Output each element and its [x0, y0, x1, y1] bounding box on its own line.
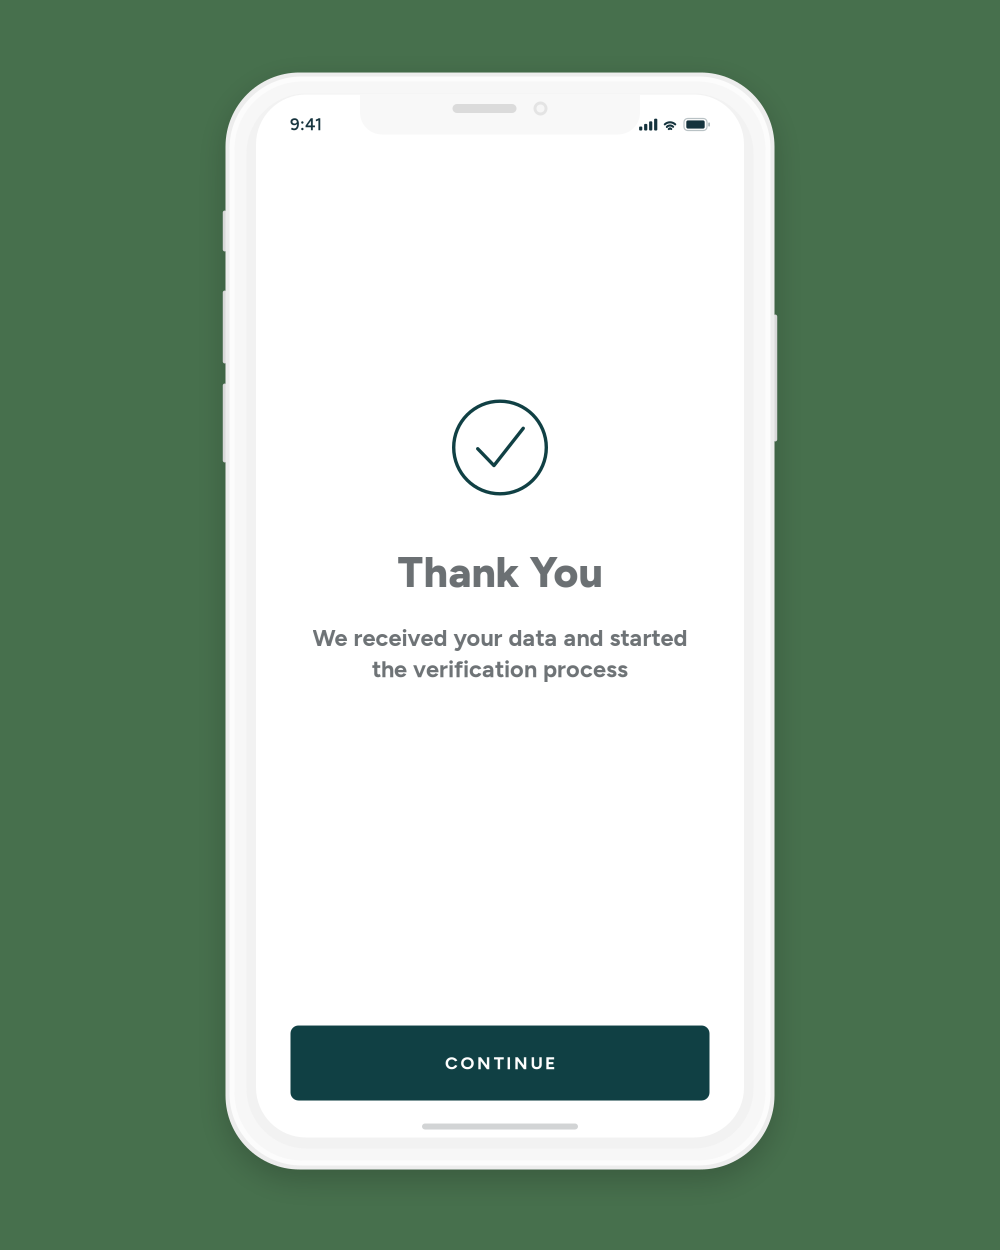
staticText: the verification process	[372, 655, 628, 683]
staticText: We received your data and started	[312, 624, 687, 652]
staticText: 9:41	[290, 114, 322, 134]
staticText: Thank You	[397, 546, 602, 598]
button[interactable]: CONTINUE	[290, 1025, 709, 1100]
staticText: CONTINUE	[445, 1052, 555, 1073]
